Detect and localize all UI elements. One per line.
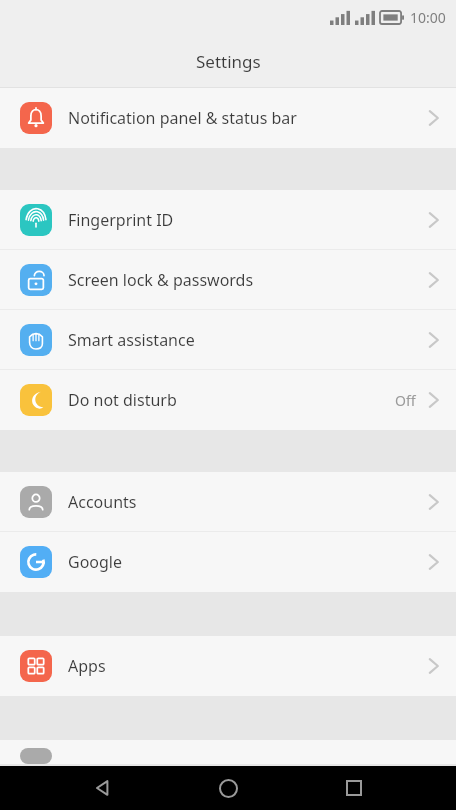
staticText: 10:00 <box>410 8 446 27</box>
button[interactable]: Screen lock & passwords <box>0 250 456 310</box>
staticText: Off <box>395 391 416 410</box>
button[interactable]: Back <box>78 766 126 810</box>
staticText: Fingerprint ID <box>68 209 174 231</box>
staticText: Notification panel & status bar <box>68 107 297 129</box>
staticText: Apps <box>68 655 106 677</box>
staticText: Accounts <box>68 491 137 513</box>
staticText: Google <box>68 551 123 573</box>
staticText: Smart assistance <box>68 329 195 351</box>
button[interactable]: Notification panel & status bar <box>0 88 456 148</box>
button[interactable]: Do not disturb <box>0 370 456 430</box>
button[interactable]: Recents <box>330 766 378 810</box>
staticText: Screen lock & passwords <box>68 269 254 291</box>
staticText: Settings <box>196 50 261 73</box>
button[interactable]: Smart assistance <box>0 310 456 370</box>
staticText: Do not disturb <box>68 389 177 411</box>
button[interactable]: Apps <box>0 636 456 696</box>
button[interactable]: Home <box>204 766 252 810</box>
button[interactable]: Accounts <box>0 472 456 532</box>
button[interactable]: Fingerprint ID <box>0 190 456 250</box>
button[interactable]: Google <box>0 532 456 592</box>
